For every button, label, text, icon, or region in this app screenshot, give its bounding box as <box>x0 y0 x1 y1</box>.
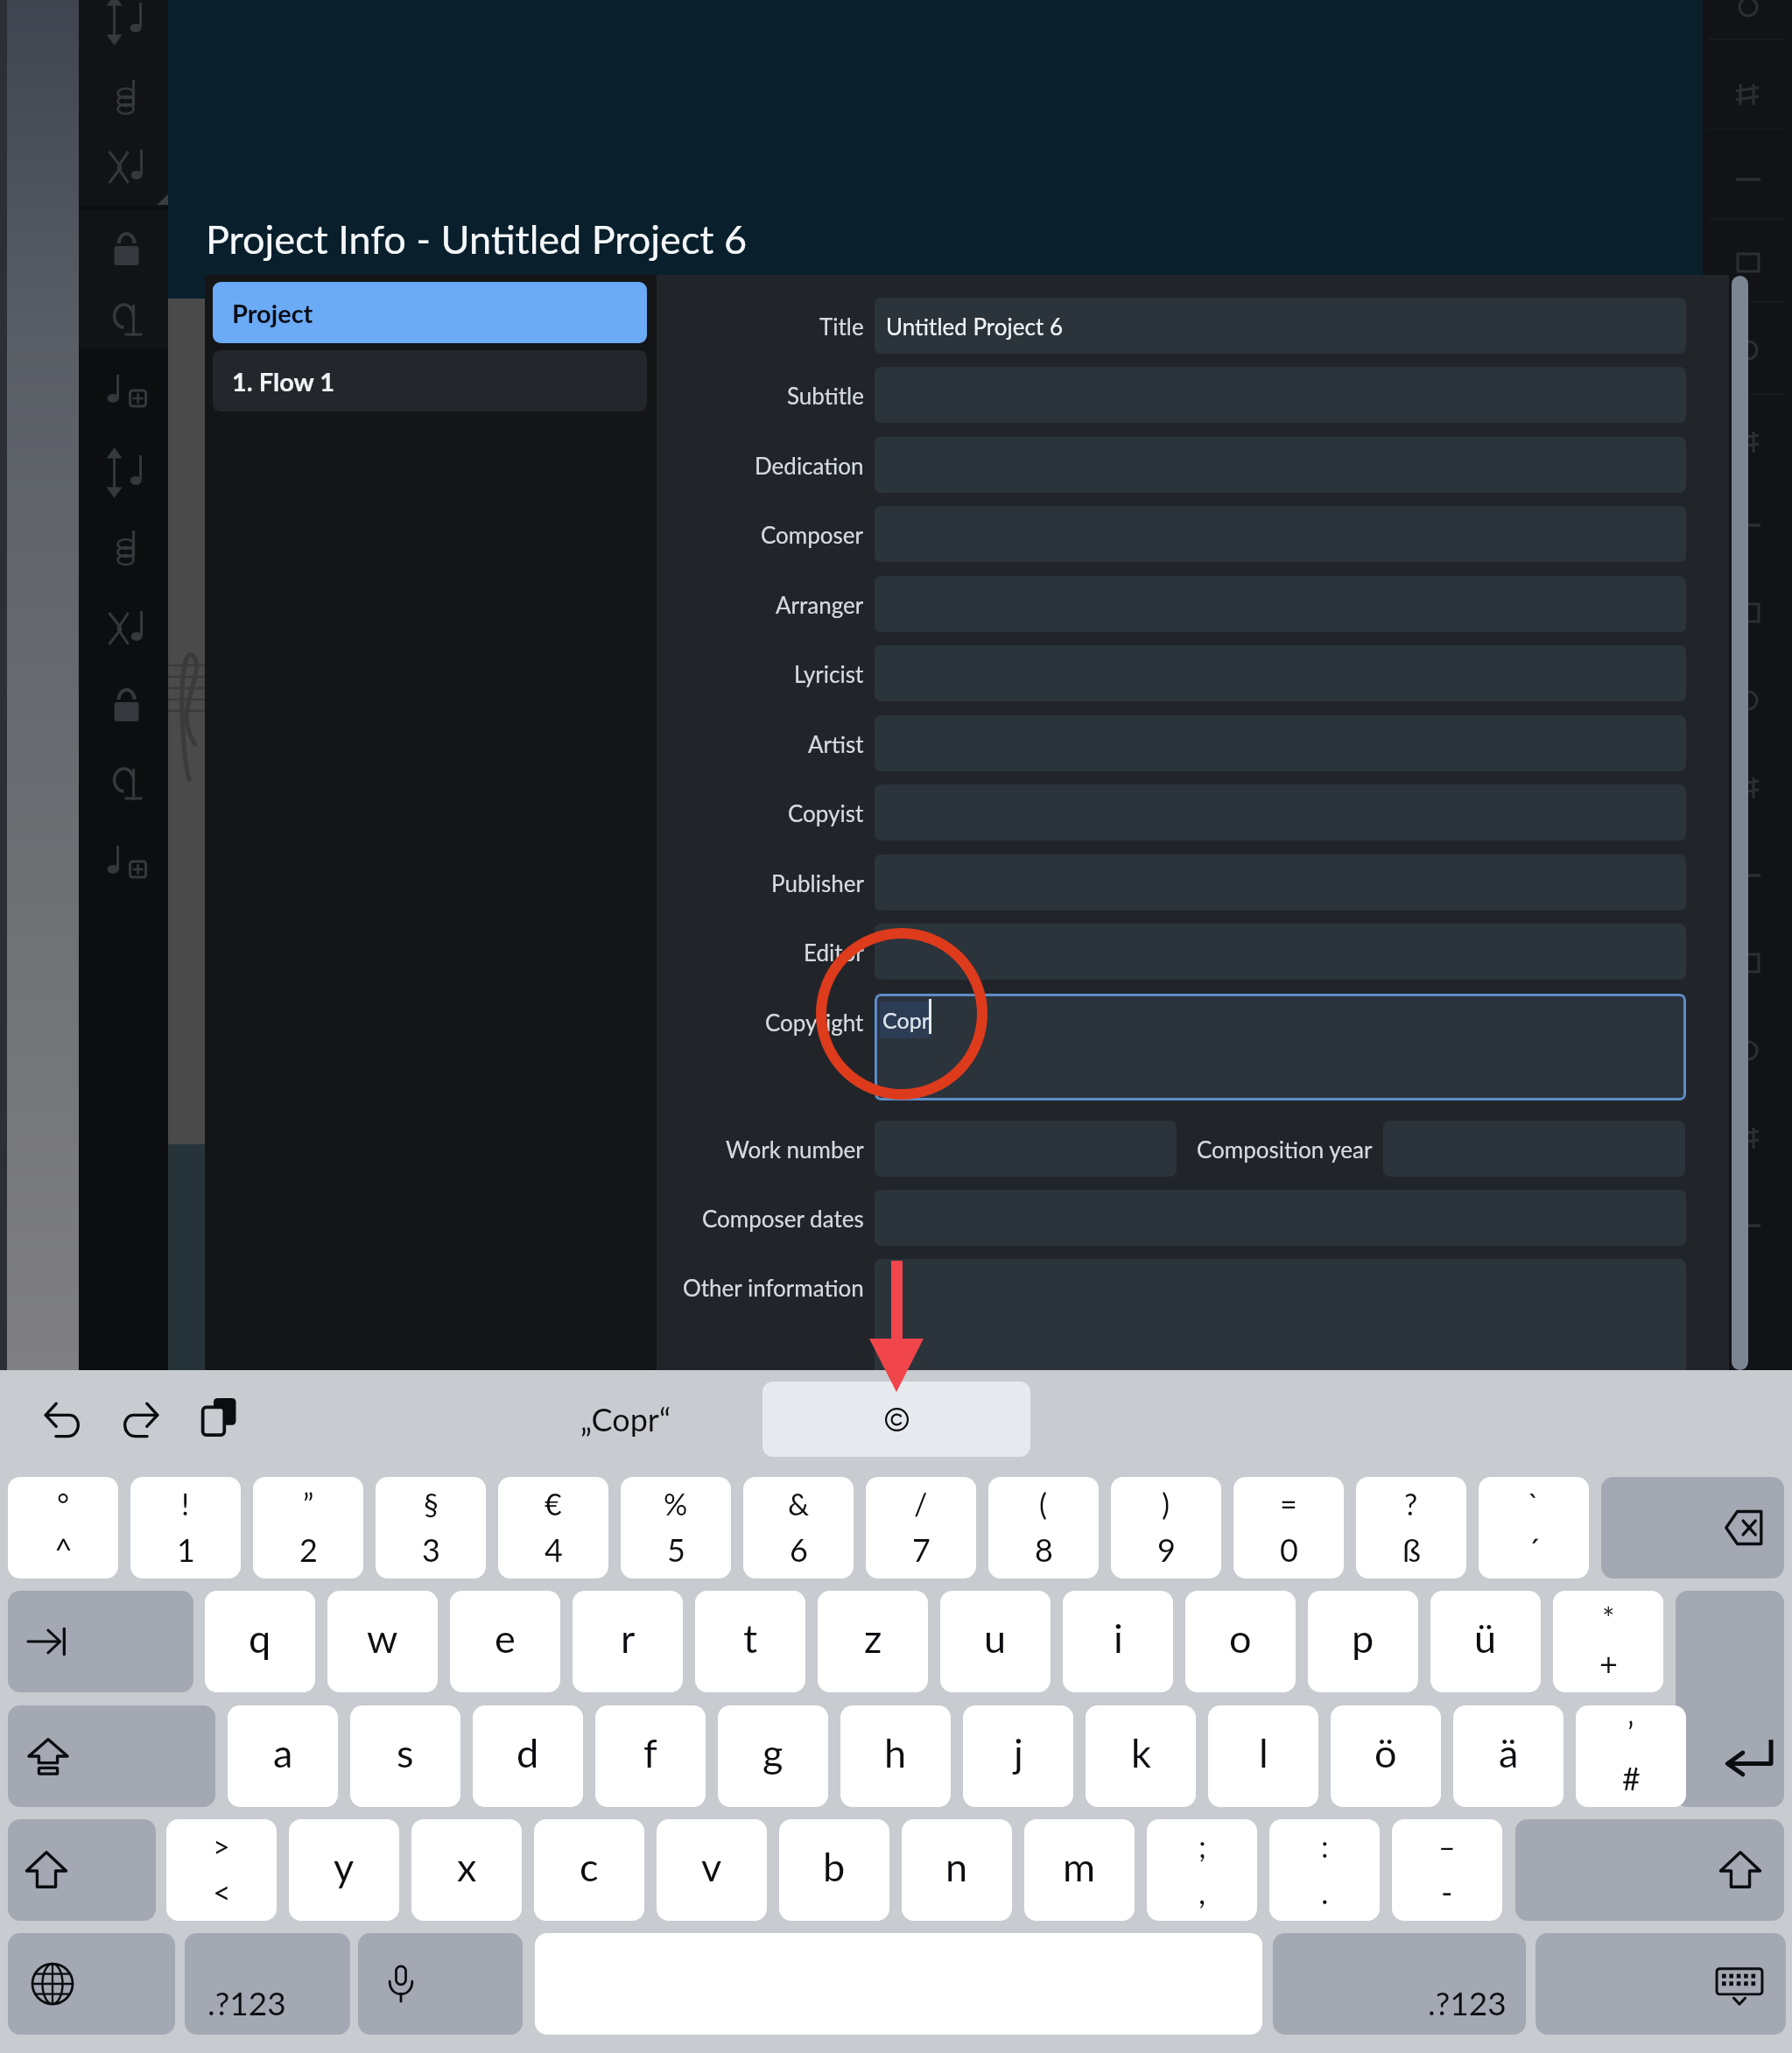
button[interactable]: Editor <box>875 924 1686 980</box>
button[interactable]: t <box>695 1591 805 1692</box>
staticText: u <box>984 1614 1007 1662</box>
button[interactable]: h <box>840 1705 951 1807</box>
staticText: t <box>743 1614 758 1662</box>
button[interactable]: ä <box>1453 1705 1564 1807</box>
button[interactable]: w <box>327 1591 438 1692</box>
staticText: € <box>545 1486 562 1522</box>
button[interactable]: Backspace <box>1601 1477 1784 1578</box>
button[interactable]: f <box>595 1705 706 1807</box>
staticText: Editor <box>804 939 864 966</box>
staticText: 8 <box>1035 1530 1053 1568</box>
button[interactable]: Project <box>213 282 647 343</box>
button[interactable]: Dictate <box>358 1933 523 2035</box>
button[interactable]: & <box>743 1477 854 1578</box>
button[interactable]: ö <box>1331 1705 1441 1807</box>
button[interactable]: – <box>1392 1819 1502 1921</box>
button[interactable]: .?123 <box>1273 1933 1526 2035</box>
staticText: Work number <box>726 1135 864 1163</box>
button[interactable]: i <box>1063 1591 1173 1692</box>
button[interactable]: ” <box>253 1477 363 1578</box>
staticText: : <box>1321 1828 1329 1864</box>
button[interactable]: = <box>1233 1477 1344 1578</box>
button[interactable]: ( <box>988 1477 1099 1578</box>
staticText: Untitled Project 6 <box>886 313 1063 340</box>
button[interactable]: c <box>534 1819 644 1921</box>
button[interactable]: .?123 <box>185 1933 350 2035</box>
button[interactable]: v <box>657 1819 767 1921</box>
button[interactable]: 1. Flow 1 <box>213 350 647 411</box>
staticText: 6 <box>790 1530 808 1568</box>
button[interactable]: m <box>1024 1819 1135 1921</box>
button[interactable]: : <box>1269 1819 1380 1921</box>
staticText: - <box>1441 1873 1453 1910</box>
button[interactable]: y <box>289 1819 399 1921</box>
staticText: 7 <box>912 1530 931 1568</box>
button[interactable]: ° <box>8 1477 118 1578</box>
staticText: Subtitle <box>787 382 864 409</box>
button[interactable]: e <box>450 1591 560 1692</box>
button[interactable]: € <box>498 1477 608 1578</box>
button[interactable]: ; <box>1147 1819 1257 1921</box>
button[interactable]: ? <box>1356 1477 1466 1578</box>
staticText: ; <box>1198 1828 1206 1864</box>
button[interactable]: Change keyboard <box>8 1933 175 2035</box>
button[interactable]: Insert copyright symbol <box>762 1382 1030 1457</box>
button[interactable]: g <box>718 1705 828 1807</box>
button[interactable]: ’ <box>1576 1705 1686 1807</box>
button[interactable]: Tab <box>8 1591 193 1692</box>
staticText: Copyist <box>788 799 864 826</box>
button[interactable]: ) <box>1111 1477 1221 1578</box>
button[interactable]: z <box>818 1591 928 1692</box>
button[interactable]: Return <box>1676 1591 1784 1807</box>
button[interactable]: u <box>940 1591 1051 1692</box>
button[interactable]: % <box>621 1477 731 1578</box>
button[interactable]: Title <box>875 298 1686 354</box>
staticText: y <box>334 1843 355 1890</box>
button[interactable]: o <box>1185 1591 1296 1692</box>
button[interactable]: § <box>376 1477 486 1578</box>
button[interactable]: Space <box>535 1933 1262 2035</box>
button[interactable]: Shift <box>8 1819 156 1921</box>
button[interactable]: * <box>1553 1591 1663 1692</box>
button[interactable]: > <box>166 1819 277 1921</box>
button[interactable]: Other information <box>875 1259 1686 1390</box>
button[interactable]: Shift <box>1515 1819 1784 1921</box>
button[interactable]: s <box>350 1705 460 1807</box>
staticText: § <box>424 1486 439 1522</box>
button[interactable]: d <box>473 1705 583 1807</box>
button[interactable]: l <box>1208 1705 1318 1807</box>
staticText: ? <box>1404 1486 1418 1522</box>
button[interactable]: Copyright <box>875 994 1686 1100</box>
button[interactable]: Caps lock <box>8 1705 215 1807</box>
button[interactable]: r <box>573 1591 683 1692</box>
button[interactable]: Hide keyboard <box>1535 1933 1786 2035</box>
button[interactable]: k <box>1086 1705 1196 1807</box>
button[interactable]: j <box>963 1705 1073 1807</box>
button[interactable]: Paste <box>200 1397 239 1436</box>
button[interactable]: p <box>1308 1591 1418 1692</box>
staticText: Title <box>819 313 864 340</box>
staticText: d <box>517 1729 539 1776</box>
button[interactable]: n <box>902 1819 1012 1921</box>
button[interactable]: Redo <box>124 1403 158 1437</box>
button[interactable]: a <box>228 1705 338 1807</box>
button[interactable]: q <box>205 1591 315 1692</box>
button[interactable]: ` <box>1479 1477 1589 1578</box>
button[interactable]: x <box>411 1819 522 1921</box>
button[interactable]: Undo <box>45 1403 79 1437</box>
button[interactable]: b <box>779 1819 889 1921</box>
button[interactable]: ! <box>130 1477 241 1578</box>
button[interactable]: ü <box>1430 1591 1541 1692</box>
button[interactable]: / <box>866 1477 976 1578</box>
